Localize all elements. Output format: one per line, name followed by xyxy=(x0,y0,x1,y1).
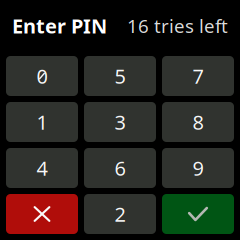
staticText: 3 xyxy=(114,109,125,135)
staticText: 16 tries left xyxy=(127,13,228,38)
button[interactable]: 3 xyxy=(84,102,156,142)
staticText: 8 xyxy=(192,109,203,135)
button[interactable]: 9 xyxy=(162,148,234,188)
staticText: 9 xyxy=(192,155,203,181)
button[interactable]: 2 xyxy=(84,194,156,234)
staticText: 7 xyxy=(192,63,203,89)
button[interactable]: Cancel xyxy=(6,194,78,234)
staticText: 5 xyxy=(114,63,125,89)
button[interactable]: 1 xyxy=(6,102,78,142)
button[interactable]: 6 xyxy=(84,148,156,188)
staticText: Enter PIN xyxy=(12,12,107,39)
button[interactable]: 4 xyxy=(6,148,78,188)
button[interactable]: 7 xyxy=(162,56,234,96)
staticText: 0 xyxy=(36,63,47,89)
button[interactable]: 0 xyxy=(6,56,78,96)
staticText: 6 xyxy=(114,155,125,181)
button[interactable]: Confirm xyxy=(162,194,234,234)
staticText: 1 xyxy=(36,109,47,135)
staticText: 4 xyxy=(36,155,47,181)
staticText: 2 xyxy=(114,201,125,227)
button[interactable]: 5 xyxy=(84,56,156,96)
button[interactable]: 8 xyxy=(162,102,234,142)
